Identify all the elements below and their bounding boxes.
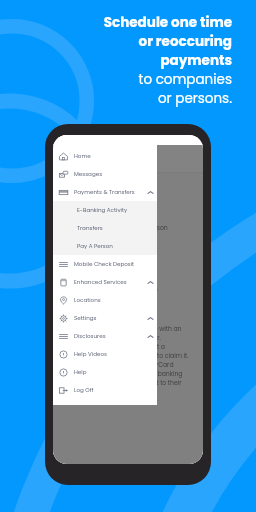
staticText: Log Off xyxy=(74,386,94,394)
button[interactable]: Help Videos xyxy=(53,345,157,363)
button[interactable]: Locations xyxy=(53,291,157,309)
staticText: They can claim it to their MasterCard xyxy=(61,361,174,370)
staticText: E-Banking Activity xyxy=(77,206,128,214)
staticText: Mobile Check Deposit xyxy=(74,260,135,268)
button[interactable]: Mobile Check Deposit xyxy=(53,255,157,273)
staticText: Enhanced Services xyxy=(74,278,127,286)
staticText: Messages xyxy=(74,170,103,178)
staticText: Disclosures xyxy=(74,332,106,340)
staticText: or reoccuring xyxy=(138,32,232,51)
staticText: email address or phone number. xyxy=(61,334,161,343)
staticText: Home xyxy=(74,152,91,160)
staticText: Pay A Person xyxy=(77,242,113,250)
staticText: Payments & Transfers xyxy=(74,188,135,196)
button[interactable]: Settings xyxy=(53,309,157,327)
button[interactable]: Pay A Person xyxy=(53,237,157,255)
button[interactable]: Disclosures xyxy=(53,327,157,345)
staticText: to companies xyxy=(138,70,232,89)
button[interactable]: Payments & Transfers xyxy=(53,183,157,201)
staticText: Help xyxy=(74,368,87,376)
staticText: Help Videos xyxy=(74,350,107,358)
staticText: Transfers xyxy=(77,224,103,232)
button[interactable]: Enhanced Services xyxy=(53,273,157,291)
button[interactable]: Messages xyxy=(53,165,157,183)
staticText: application to request a deposit to thei… xyxy=(61,379,182,388)
staticText: or persons. xyxy=(157,89,232,108)
button[interactable]: Log Off xyxy=(53,381,157,399)
staticText: You can send money to anyone with an xyxy=(61,325,182,334)
staticText: money using your Person to Person xyxy=(61,224,168,233)
staticText: Split the cost for rent and other xyxy=(61,245,156,254)
button[interactable]: E-Banking Activity xyxy=(53,201,157,219)
staticText: debit card or log in to their own bankin… xyxy=(61,370,183,379)
staticText: notification with details on how to clai… xyxy=(61,352,189,361)
staticText: Locations xyxy=(74,296,101,304)
button[interactable]: Transfers xyxy=(53,219,157,237)
button[interactable]: Help xyxy=(53,363,157,381)
staticText: The recipient of the funds is sent a xyxy=(61,343,165,352)
staticText: payments xyxy=(160,51,232,70)
staticText: Pay for your babysitter, or piano xyxy=(61,286,158,295)
button[interactable]: Home xyxy=(53,147,157,165)
staticText: Schedule one time xyxy=(103,13,232,32)
staticText: Settings xyxy=(74,314,97,322)
staticText: Send a friend a birthday gift. xyxy=(61,261,148,270)
